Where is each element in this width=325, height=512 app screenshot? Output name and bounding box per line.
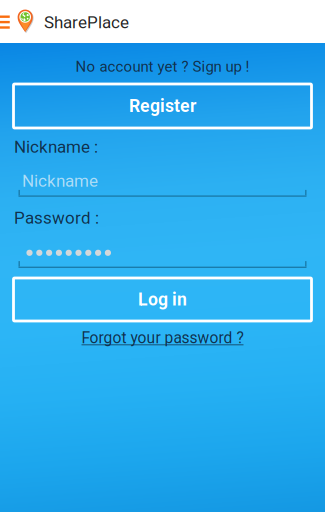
staticText: No account yet ? Sign up ! (75, 58, 249, 75)
staticText: Log in (138, 289, 187, 310)
button[interactable]: Register (13, 84, 311, 128)
staticText: Nickname : (14, 137, 98, 157)
staticText: SharePlace (44, 12, 129, 32)
staticText: Password : (14, 208, 99, 228)
button[interactable]: Menu (0, 1, 13, 44)
button[interactable]: Log in (13, 278, 311, 321)
staticText: Register (129, 96, 196, 116)
staticText: Nickname (22, 171, 98, 191)
button[interactable]: Forgot your password ? (0, 327, 325, 349)
button[interactable]: No account yet ? Sign up ! (0, 55, 325, 77)
staticText: Forgot your password ? (81, 329, 243, 347)
